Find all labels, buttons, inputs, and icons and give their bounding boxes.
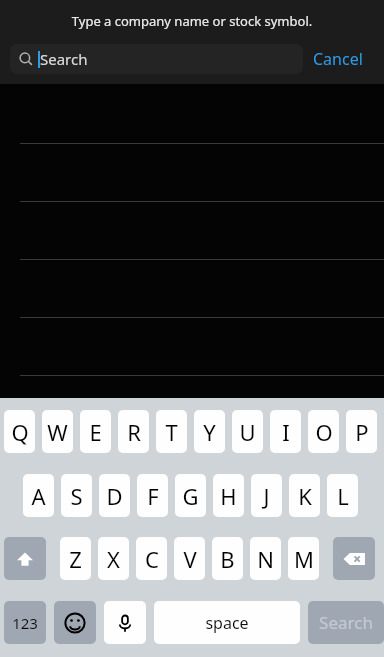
staticText: O [315, 417, 333, 447]
button[interactable]: C [136, 537, 167, 580]
button[interactable]: L [327, 474, 358, 517]
button[interactable]: U [232, 410, 263, 453]
button[interactable]: P [346, 410, 377, 453]
staticText: L [337, 481, 349, 511]
staticText: B [220, 544, 235, 574]
button[interactable]: N [250, 537, 281, 580]
staticText: M [294, 544, 314, 574]
button[interactable]: Emoji [54, 601, 96, 644]
button[interactable] [0, 260, 384, 318]
staticText: I [282, 417, 290, 447]
staticText: R [127, 417, 141, 447]
button[interactable]: O [308, 410, 339, 453]
staticText: P [355, 417, 369, 447]
button[interactable] [0, 202, 384, 260]
staticText: D [106, 481, 123, 511]
button[interactable]: W [42, 410, 73, 453]
button[interactable]: A [23, 474, 54, 517]
staticText: space [205, 612, 249, 634]
button[interactable] [0, 318, 384, 376]
staticText: W [47, 417, 68, 447]
button[interactable]: Search [308, 601, 384, 644]
staticText: Type a company name or stock symbol. [0, 12, 384, 30]
staticText: S [70, 481, 83, 511]
staticText: K [298, 481, 312, 511]
staticText: A [31, 481, 46, 511]
button[interactable]: Shift [4, 537, 46, 580]
staticText: Search [40, 49, 88, 69]
button[interactable]: Z [60, 537, 91, 580]
button[interactable]: Y [194, 410, 225, 453]
button[interactable]: E [80, 410, 111, 453]
button[interactable]: Cancel [311, 44, 365, 74]
staticText: G [182, 481, 199, 511]
staticText: Q [11, 417, 29, 447]
button[interactable]: 123 [4, 601, 46, 644]
staticText: Z [69, 544, 82, 574]
staticText: V [183, 544, 197, 574]
staticText: U [239, 417, 256, 447]
staticText: J [263, 481, 270, 511]
button[interactable]: H [213, 474, 244, 517]
button[interactable] [0, 84, 384, 144]
button[interactable]: R [118, 410, 149, 453]
button[interactable]: D [99, 474, 130, 517]
button[interactable]: Search [10, 44, 303, 74]
button[interactable]: X [98, 537, 129, 580]
button[interactable]: F [137, 474, 168, 517]
staticText: E [89, 417, 102, 447]
staticText: C [145, 544, 159, 574]
button[interactable]: space [154, 601, 300, 644]
staticText: X [107, 544, 120, 574]
button[interactable] [0, 144, 384, 202]
button[interactable]: K [289, 474, 320, 517]
staticText: 123 [12, 613, 38, 633]
button[interactable]: J [251, 474, 282, 517]
button[interactable]: V [174, 537, 205, 580]
staticText: N [257, 544, 274, 574]
staticText: H [220, 481, 237, 511]
button[interactable]: G [175, 474, 206, 517]
staticText: T [165, 417, 178, 447]
button[interactable]: B [212, 537, 243, 580]
button[interactable]: T [156, 410, 187, 453]
button[interactable]: Dictate [104, 601, 146, 644]
staticText: Y [203, 417, 216, 447]
staticText: F [147, 481, 159, 511]
button[interactable]: Q [4, 410, 35, 453]
button[interactable]: S [61, 474, 92, 517]
button[interactable]: I [270, 410, 301, 453]
button[interactable]: M [288, 537, 319, 580]
staticText: Search [319, 611, 373, 634]
staticText: Cancel [313, 48, 363, 70]
button[interactable]: Backspace [333, 537, 375, 580]
